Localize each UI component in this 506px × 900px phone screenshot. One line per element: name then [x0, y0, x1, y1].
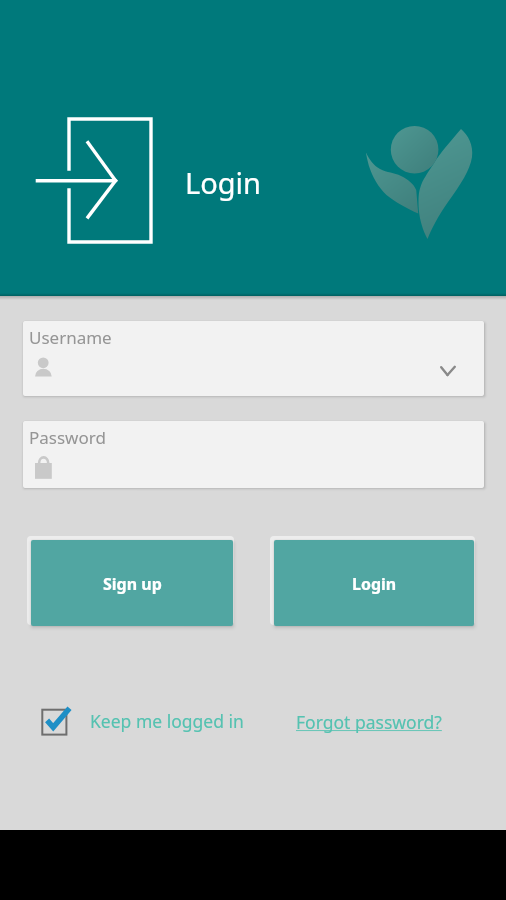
- button[interactable]: Forgot password?: [293, 703, 439, 727]
- staticText: Password: [29, 426, 106, 449]
- button[interactable]: Sign up: [31, 540, 233, 626]
- button[interactable]: Password: [23, 421, 484, 488]
- other: Login: [35, 117, 157, 245]
- staticText: Keep me logged in: [90, 709, 244, 733]
- staticText: Username: [29, 326, 112, 349]
- staticText: Login: [352, 573, 397, 595]
- button[interactable]: Keep me logged in: [30, 700, 244, 740]
- staticText: Forgot password?: [296, 710, 442, 734]
- staticText: Login: [185, 163, 261, 202]
- other: Show accounts: [440, 366, 456, 377]
- button[interactable]: Login: [274, 540, 474, 626]
- staticText: Sign up: [103, 573, 162, 595]
- button[interactable]: Username: [23, 321, 484, 396]
